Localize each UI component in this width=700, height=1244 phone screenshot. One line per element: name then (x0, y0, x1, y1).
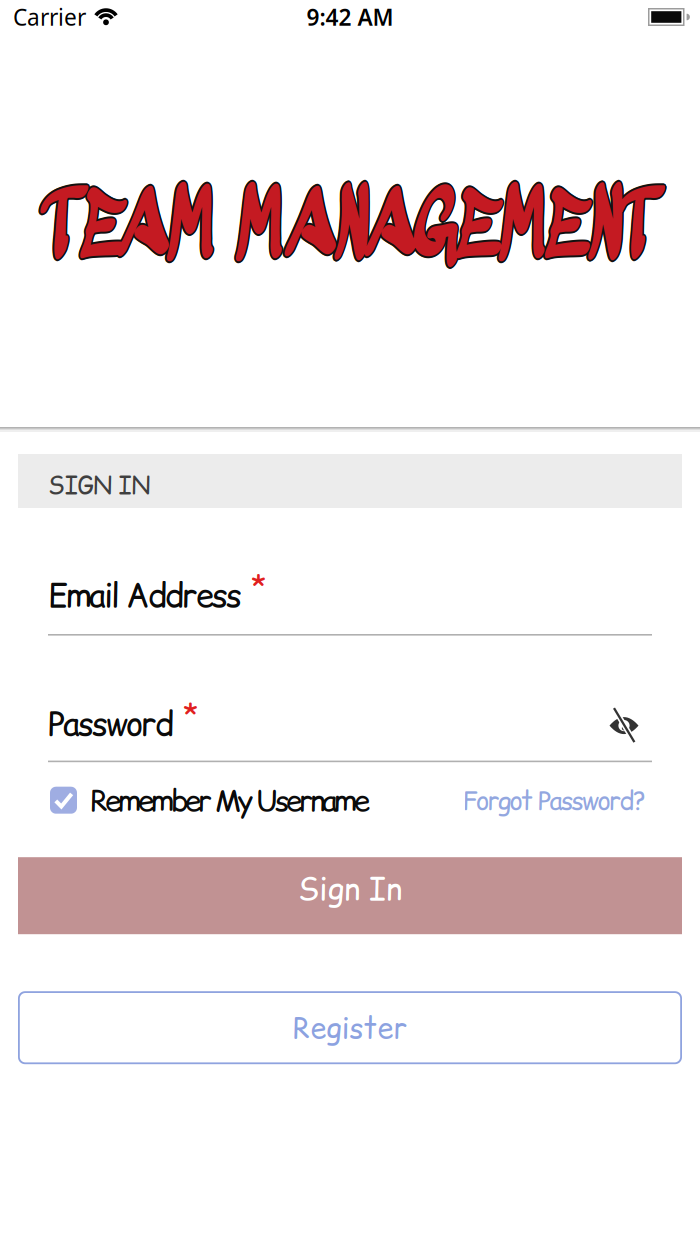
staticText: Forgot Password? (462, 782, 646, 818)
staticText: Sign In (298, 867, 402, 910)
staticText: TEAM MANAGEMENT (42, 181, 661, 281)
button[interactable]: Email Address (18, 576, 682, 636)
staticText: Password (48, 701, 174, 746)
staticText: TEAM MANAGEMENT (39, 180, 659, 280)
staticText: TEAM MANAGEMENT (40, 183, 660, 283)
button[interactable]: Forgot Password? (462, 782, 646, 818)
button[interactable]: Password (18, 705, 682, 762)
staticText: TEAM MANAGEMENT (39, 182, 659, 282)
button[interactable]: Register (18, 991, 682, 1064)
staticText: Email Address (48, 572, 242, 618)
staticText: Remember My Username (90, 780, 370, 821)
staticText: 9:42 AM (306, 2, 393, 32)
staticText: Carrier (13, 2, 86, 32)
button[interactable]: Remember My Username (50, 780, 370, 821)
staticText: TEAM MANAGEMENT (41, 182, 661, 282)
button[interactable] (606, 707, 642, 743)
button[interactable]: Sign In (18, 857, 682, 934)
staticText: * (251, 566, 267, 608)
staticText: SIGN IN (48, 468, 150, 502)
staticText: TEAM MANAGEMENT (38, 181, 658, 281)
staticText: Register (292, 1008, 407, 1048)
staticText: TEAM MANAGEMENT (41, 180, 661, 280)
staticText: TEAM MANAGEMENT (40, 181, 660, 281)
staticText: * (183, 694, 199, 737)
staticText: TEAM MANAGEMENT (40, 179, 660, 279)
